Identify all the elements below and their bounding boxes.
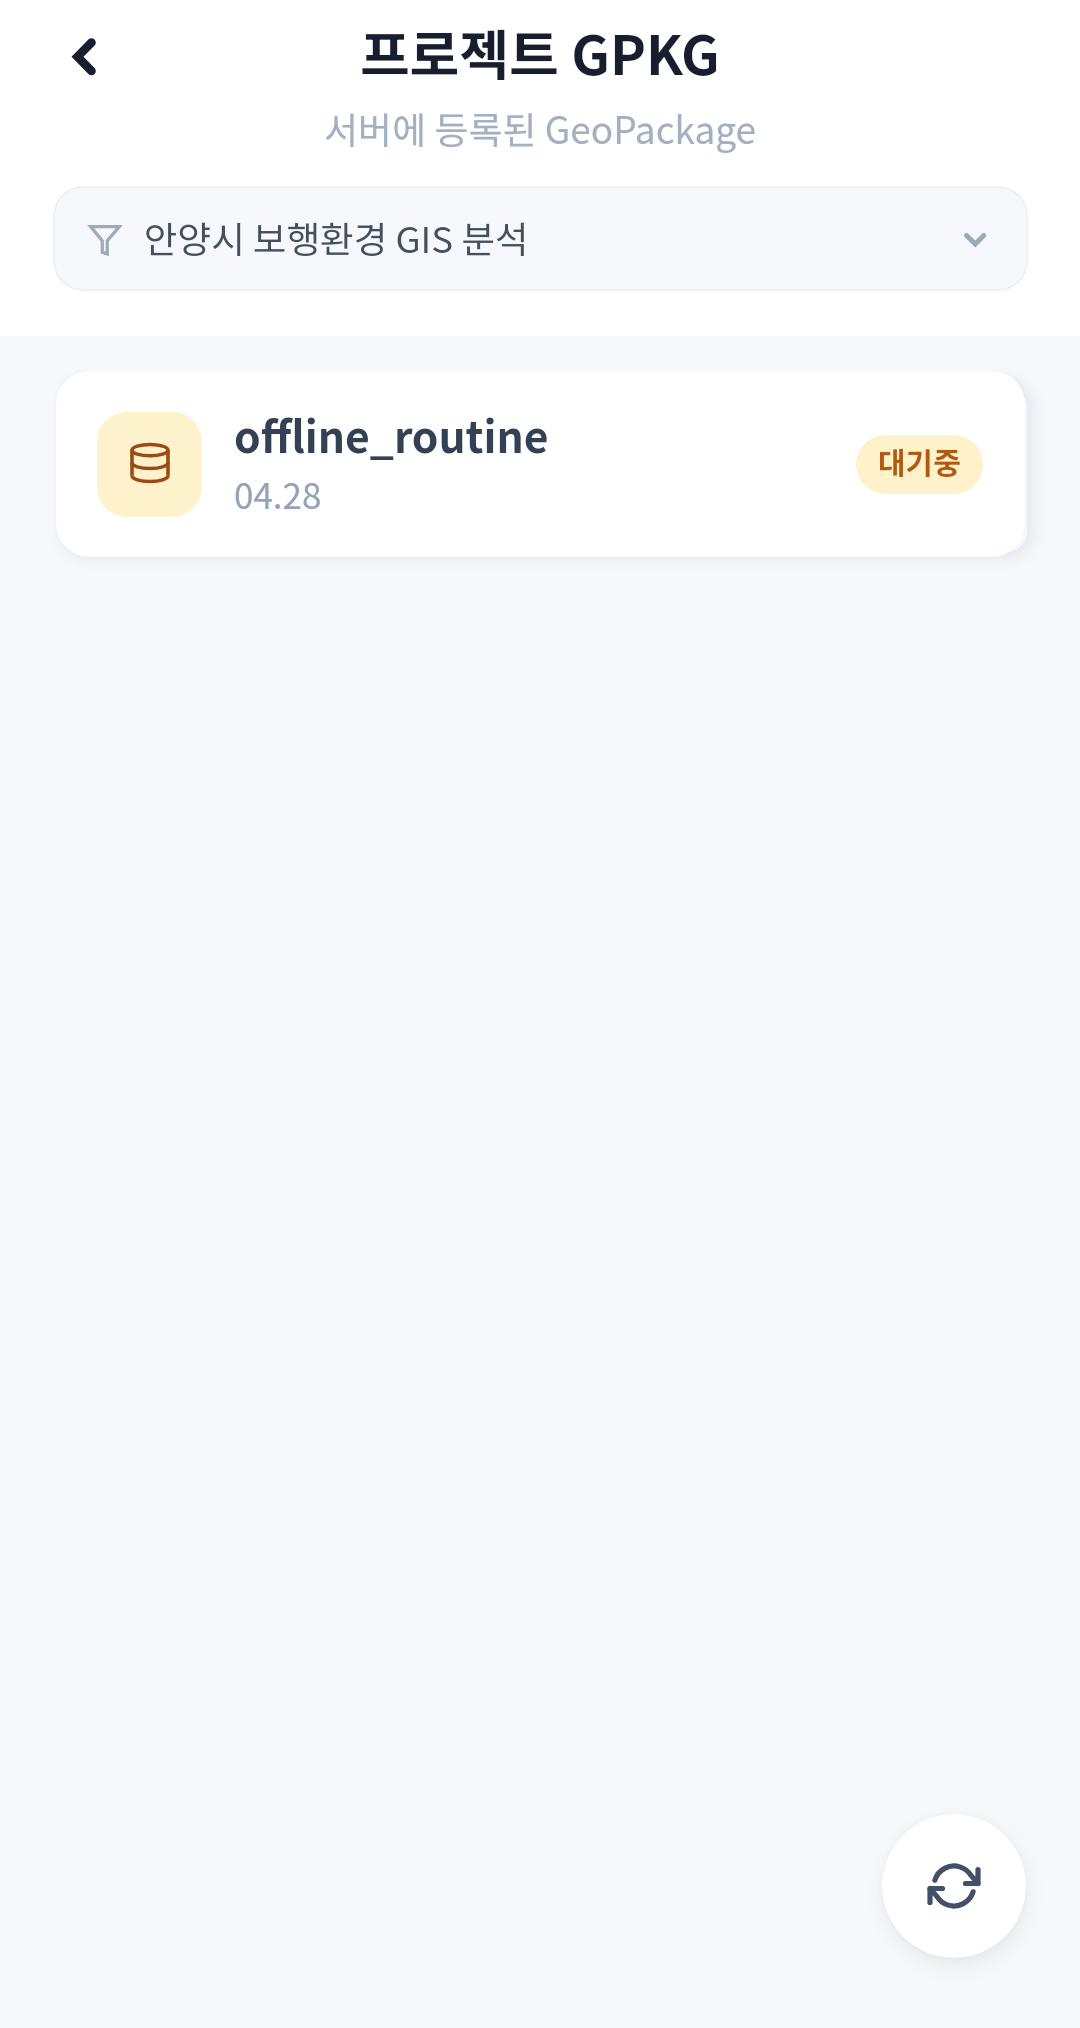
button[interactable]: Refresh <box>882 1814 1026 1958</box>
button[interactable]: offline_routine <box>56 371 1025 557</box>
button[interactable]: Back <box>44 26 104 86</box>
staticText: 서버에 등록된 GeoPackage <box>0 101 1080 155</box>
staticText: offline_routine <box>234 404 549 466</box>
staticText: 안양시 보행환경 GIS 분석 <box>144 211 529 264</box>
staticText: 프로젝트 GPKG <box>0 12 1080 90</box>
staticText: 04.28 <box>234 468 322 519</box>
button[interactable]: 안양시 보행환경 GIS 분석 <box>53 186 1028 291</box>
staticText: 대기중 <box>878 439 961 482</box>
